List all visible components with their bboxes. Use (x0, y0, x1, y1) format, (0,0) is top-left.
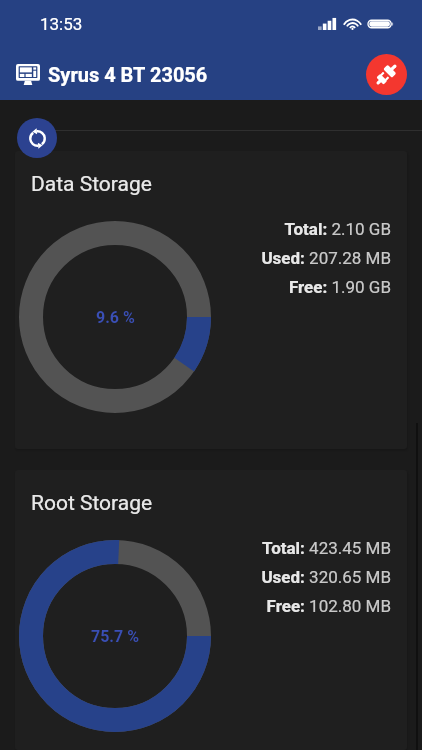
staticText: Root Storage (31, 491, 153, 516)
staticText: Total: 423.45 MB (262, 538, 391, 558)
staticText: Free: 102.80 MB (266, 596, 391, 616)
button[interactable]: Data Storage (15, 151, 407, 449)
button[interactable]: Refresh (17, 118, 57, 158)
button[interactable]: Syrus 4 BT 23056 (16, 53, 208, 95)
staticText: 13:53 (40, 14, 83, 34)
button[interactable]: Disconnect (366, 54, 407, 95)
staticText: Used: 320.65 MB (261, 567, 391, 587)
staticText: 9.6 % (96, 308, 135, 327)
button[interactable]: Root Storage (15, 470, 407, 750)
staticText: Syrus 4 BT 23056 (48, 63, 208, 86)
staticText: Free: 1.90 GB (288, 277, 391, 297)
staticText: Used: 207.28 MB (261, 248, 391, 268)
staticText: 75.7 % (91, 627, 139, 646)
staticText: Total: 2.10 GB (284, 219, 391, 239)
staticText: Data Storage (31, 172, 152, 197)
